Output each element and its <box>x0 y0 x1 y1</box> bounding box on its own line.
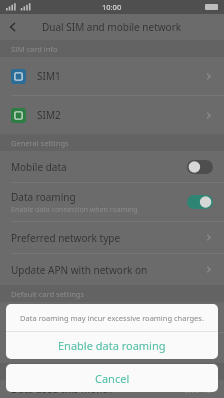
staticText: Mobile data <box>11 160 67 174</box>
staticText: Dual SIM and mobile network <box>42 20 182 34</box>
staticText: SIM card info <box>11 44 58 54</box>
staticText: Ask before dialling <box>143 312 213 323</box>
button[interactable]: Enable data roaming <box>6 332 218 359</box>
staticText: SIM2 <box>37 108 61 122</box>
staticText: 10:00 <box>102 2 122 12</box>
button[interactable]: Data used this month <box>0 380 224 398</box>
staticText: Preferred network type <box>11 231 121 245</box>
button[interactable]: SIM1 <box>0 57 224 95</box>
button[interactable]: Cancel <box>6 364 218 392</box>
button[interactable]: Internet <box>0 333 224 363</box>
staticText: SIM1 <box>37 69 61 83</box>
staticText: Data roaming <box>11 190 76 204</box>
staticText: Data used this month <box>11 382 113 396</box>
staticText: Enable data roaming <box>58 338 166 353</box>
staticText: Enable data connection when roaming <box>11 205 138 215</box>
staticText: Data roaming may incur excessive roaming… <box>20 313 204 323</box>
button[interactable]: Mobile data <box>0 151 224 182</box>
staticText: Call <box>11 310 29 324</box>
button[interactable]: Update APN with network on <box>0 254 224 285</box>
staticText: 0.00 KB <box>184 384 213 395</box>
button[interactable]: Preferred network type <box>0 222 224 253</box>
button[interactable]: Data roaming <box>0 183 224 221</box>
staticText: Update APN with network on <box>11 263 148 277</box>
staticText: Default card settings <box>11 289 85 299</box>
button[interactable]: Back <box>0 14 26 40</box>
staticText: Cancel <box>95 371 130 386</box>
button[interactable]: Call <box>0 302 224 332</box>
staticText: General settings <box>11 138 69 148</box>
button[interactable]: SIM2 <box>0 96 224 134</box>
